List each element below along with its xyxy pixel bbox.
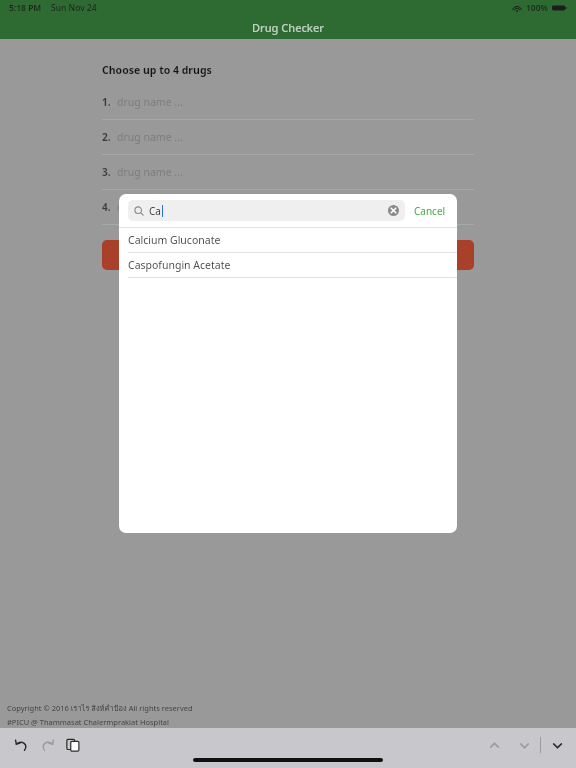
staticText: #PICU @ Thammasat Chalermprakiat Hospita…: [7, 717, 170, 727]
button[interactable]: Clear text: [388, 205, 399, 216]
staticText: Calcium Gluconate: [128, 233, 221, 247]
staticText: drug name ...: [117, 130, 183, 144]
button[interactable]: Caspofungin Acetate: [119, 253, 457, 277]
staticText: 1.: [102, 95, 111, 109]
button[interactable]: Previous field: [483, 734, 505, 756]
staticText: 4.: [102, 200, 111, 214]
staticText: Caspofungin Acetate: [128, 258, 231, 272]
button[interactable]: Cancel: [412, 200, 448, 222]
staticText: drug name ...: [117, 95, 183, 109]
button[interactable]: Next field: [513, 734, 535, 756]
staticText: 5:18 PM: [9, 2, 42, 14]
button[interactable]: 3.: [102, 161, 474, 196]
button[interactable]: [102, 240, 474, 270]
button[interactable]: 1.: [102, 91, 474, 126]
staticText: 3.: [102, 165, 111, 179]
staticText: Choose up to 4 drugs: [102, 63, 212, 77]
button[interactable]: 4.: [102, 196, 474, 231]
button[interactable]: Hide keyboard: [546, 734, 568, 756]
button[interactable]: Redo: [36, 734, 58, 756]
staticText: drug name ...: [117, 165, 183, 179]
button[interactable]: 2.: [102, 126, 474, 161]
button[interactable]: Paste: [62, 734, 84, 756]
staticText: Sun Nov 24: [51, 2, 97, 14]
staticText: drug name ...: [117, 200, 183, 214]
staticText: Copyright © 2016 เราไร สิงห์คำป้อง All r…: [7, 702, 193, 714]
button[interactable]: Undo: [10, 734, 32, 756]
staticText: Cancel: [414, 204, 446, 218]
staticText: 100%: [526, 2, 549, 14]
button[interactable]: Calcium Gluconate: [119, 228, 457, 252]
button[interactable]: Ca: [128, 200, 405, 221]
staticText: Ca: [149, 204, 161, 218]
staticText: 2.: [102, 130, 111, 144]
staticText: Drug Checker: [252, 20, 324, 35]
